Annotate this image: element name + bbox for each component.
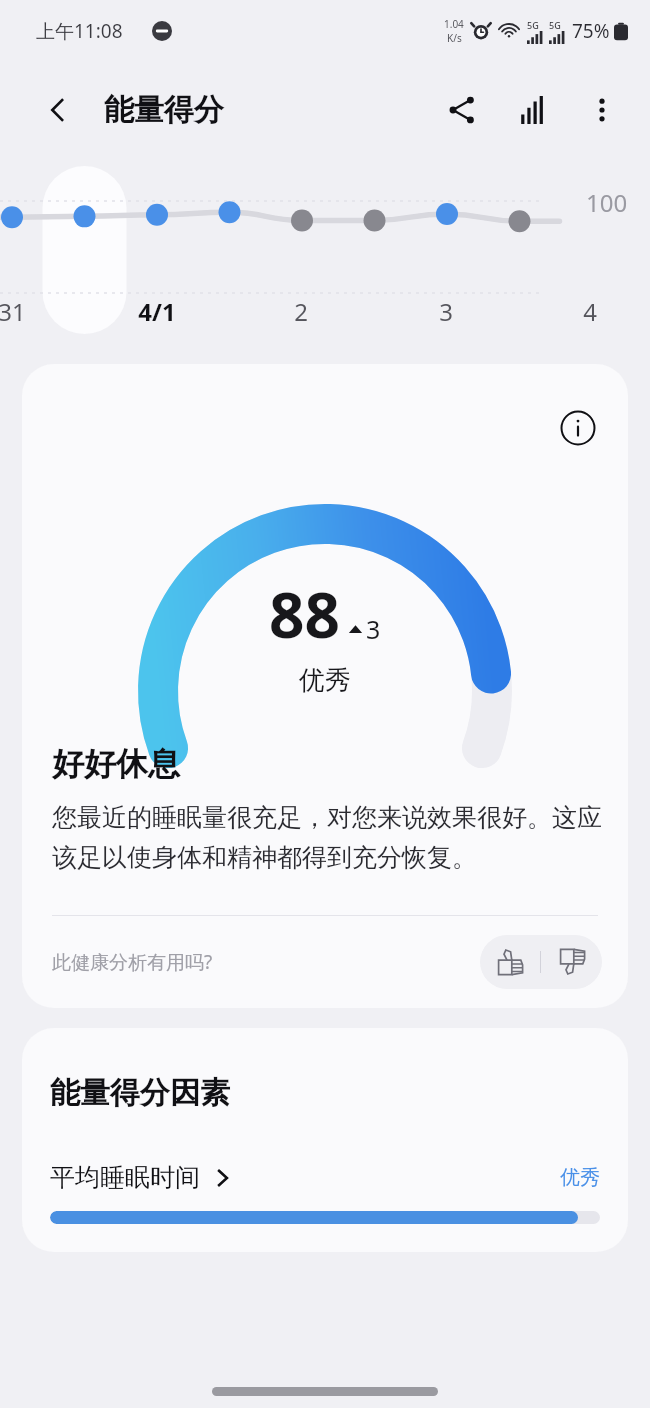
staticText: 1.04	[444, 17, 464, 31]
staticText: 上午11:08	[36, 18, 123, 44]
button[interactable]: More options	[576, 84, 628, 136]
button[interactable]: 2	[265, 295, 337, 328]
staticText: 3	[439, 295, 453, 328]
staticText: 好好休息	[52, 744, 180, 784]
button[interactable]: Not helpful	[541, 935, 602, 989]
staticText: 88	[269, 572, 340, 656]
staticText: 4/1	[138, 295, 176, 328]
button[interactable]: 平均睡眠时间	[22, 1162, 628, 1193]
staticText: 31	[0, 295, 26, 328]
button[interactable]: 4/1	[121, 295, 193, 328]
staticText: 优秀	[299, 664, 351, 697]
button[interactable]: 3	[410, 295, 482, 328]
staticText: 5G	[527, 19, 539, 31]
staticText: 2	[294, 295, 308, 328]
button[interactable]: 31	[0, 295, 48, 328]
staticText: 75%	[572, 18, 610, 44]
button[interactable]: Share	[436, 84, 488, 136]
button[interactable]: Helpful	[480, 935, 540, 989]
staticText: 能量得分因素	[50, 1074, 230, 1112]
staticText: 优秀	[560, 1165, 600, 1190]
staticText: 此健康分析有用吗?	[52, 949, 213, 975]
staticText: 能量得分	[104, 91, 224, 129]
staticText: K/s	[447, 31, 462, 45]
staticText: 100	[586, 186, 628, 219]
staticText: 平均睡眠时间	[50, 1162, 200, 1193]
button[interactable]: 4	[554, 295, 626, 328]
button[interactable]: Information	[22, 364, 628, 1008]
staticText: 5G	[549, 19, 561, 31]
button[interactable]: Chart	[508, 84, 560, 136]
staticText: 3	[366, 612, 381, 646]
button[interactable]: Information	[558, 408, 598, 448]
button[interactable]: Back	[34, 86, 82, 134]
staticText: 您最近的睡眠量很充足，对您来说效果很好。这应该足以使身体和精神都得到充分恢复。	[52, 802, 602, 873]
staticText: 4	[583, 295, 597, 328]
